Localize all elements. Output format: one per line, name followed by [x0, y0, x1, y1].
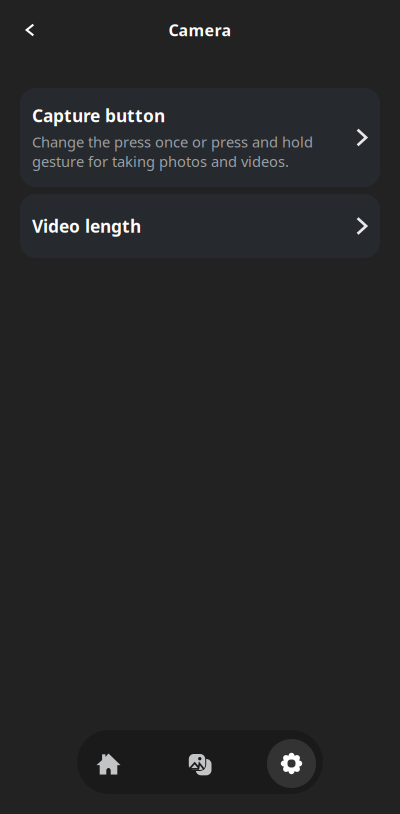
button[interactable]: Photos: [168, 730, 231, 793]
staticText: Camera: [168, 19, 231, 41]
staticText: Change the press once or press and hold …: [32, 132, 313, 171]
button[interactable]: Back: [7, 7, 51, 51]
button[interactable]: Capture button: [20, 88, 380, 187]
button[interactable]: Video length: [20, 194, 380, 258]
staticText: Video length: [32, 214, 141, 237]
staticText: Capture button: [32, 104, 165, 127]
button[interactable]: Settings: [260, 730, 323, 793]
button[interactable]: Home: [77, 730, 140, 793]
